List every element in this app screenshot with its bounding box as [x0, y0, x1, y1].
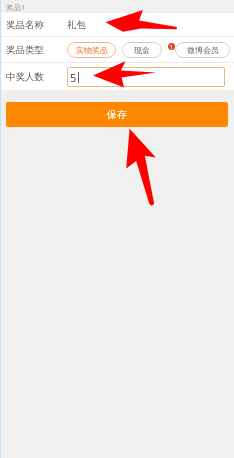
staticText: 保存 [107, 108, 127, 121]
button[interactable]: 5 [67, 67, 225, 87]
button[interactable]: 微博会员 [175, 42, 230, 58]
staticText: 奖品类型 [6, 44, 44, 56]
staticText: 实物奖品 [76, 45, 108, 55]
staticText: 1 [170, 44, 173, 50]
staticText: 礼包 [67, 19, 86, 31]
button[interactable]: 现金 [122, 42, 162, 58]
staticText: 5 [70, 70, 77, 85]
staticText: 中奖人数 [6, 71, 44, 83]
staticText: 奖品1 [6, 2, 26, 12]
staticText: 奖品名称 [6, 19, 44, 31]
button[interactable]: 奖品名称 [0, 13, 234, 36]
button[interactable]: 实物奖品 [67, 42, 116, 58]
staticText: 微博会员 [187, 45, 219, 55]
button[interactable]: 保存 [6, 102, 228, 127]
other: 1 new [168, 43, 175, 50]
staticText: 现金 [134, 45, 150, 55]
